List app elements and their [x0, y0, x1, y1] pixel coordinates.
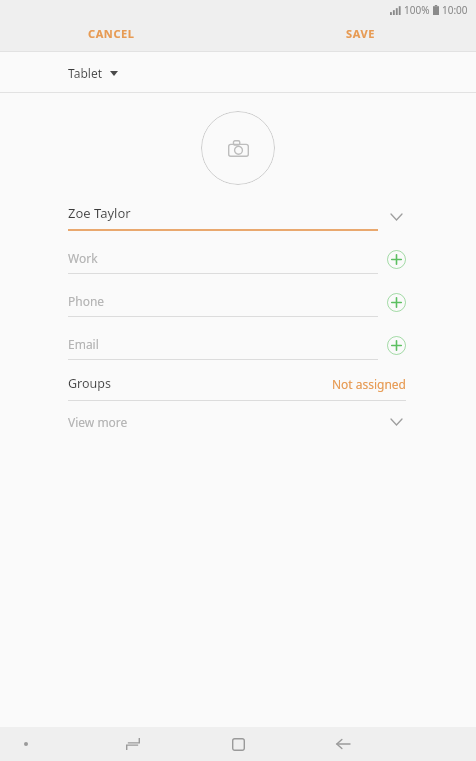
button[interactable]: SAVE	[336, 20, 385, 47]
button[interactable]: CANCEL	[78, 20, 145, 47]
staticText: Phone	[68, 293, 105, 309]
button[interactable]: Add Work	[384, 247, 408, 271]
staticText: View more	[68, 414, 128, 430]
button[interactable]: Email	[68, 336, 378, 360]
button[interactable]: Work	[68, 250, 378, 274]
button[interactable]: Add Phone	[384, 290, 408, 314]
button[interactable]: Zoe Taylor	[68, 204, 378, 231]
button[interactable]: Tablet	[58, 59, 128, 87]
staticText: Groups	[68, 375, 111, 392]
button[interactable]: Expand name	[384, 205, 408, 229]
staticText: Zoe Taylor	[68, 204, 131, 222]
button[interactable]: Recent apps	[121, 732, 145, 756]
staticText: Work	[68, 250, 98, 266]
staticText: Not assigned	[331, 376, 406, 392]
button[interactable]: Add Email	[384, 333, 408, 357]
button[interactable]: Menu indicator	[14, 732, 38, 756]
staticText: Email	[68, 336, 99, 352]
button[interactable]: Back	[331, 732, 355, 756]
button[interactable]: Groups	[68, 375, 406, 401]
staticText: SAVE	[346, 26, 375, 41]
staticText: Tablet	[68, 65, 103, 81]
button[interactable]: Home	[226, 732, 250, 756]
staticText: CANCEL	[88, 26, 135, 41]
staticText: 10:00	[442, 3, 468, 17]
button[interactable]: Phone	[68, 293, 378, 317]
button[interactable]: View more	[0, 405, 476, 439]
staticText: 100%	[404, 3, 430, 17]
button[interactable]: Add photo	[201, 111, 275, 185]
